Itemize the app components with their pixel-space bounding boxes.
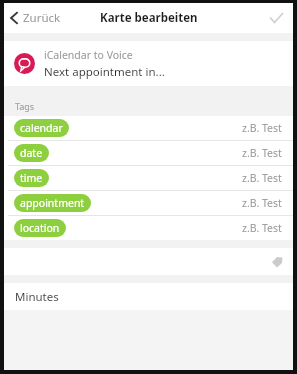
staticText: iCalendar to Voice	[44, 48, 133, 62]
button[interactable]: Minutes	[4, 283, 293, 310]
button[interactable]: date	[4, 141, 293, 165]
staticText: z.B. Test	[242, 146, 282, 160]
staticText: appointment	[20, 196, 85, 210]
button[interactable]: Zurück	[4, 3, 71, 33]
staticText: Karte bearbeiten	[100, 10, 198, 26]
button[interactable]: calendar	[4, 116, 293, 140]
staticText: Tags	[15, 100, 35, 112]
button[interactable]: iCalendar to Voice	[4, 41, 293, 86]
button[interactable]: Save	[260, 3, 293, 33]
staticText: location	[20, 221, 60, 235]
staticText: z.B. Test	[242, 171, 282, 185]
button[interactable]: Add tag	[4, 248, 293, 275]
staticText: Minutes	[15, 289, 59, 305]
staticText: z.B. Test	[242, 196, 282, 210]
staticText: time	[20, 171, 43, 185]
staticText: z.B. Test	[242, 121, 282, 135]
staticText: z.B. Test	[242, 221, 282, 235]
button[interactable]: appointment	[4, 191, 293, 215]
button[interactable]: location	[4, 216, 293, 240]
staticText: Zurück	[23, 10, 61, 26]
staticText: calendar	[20, 121, 63, 135]
button[interactable]: time	[4, 166, 293, 190]
staticText: Next appointment in...	[44, 64, 165, 80]
staticText: date	[20, 146, 43, 160]
